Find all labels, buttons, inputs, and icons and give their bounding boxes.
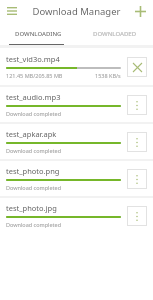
button[interactable]: More options xyxy=(127,169,147,189)
button[interactable]: More options xyxy=(127,206,147,226)
staticText: Download completed xyxy=(6,184,62,191)
button[interactable]: test_photo.png xyxy=(0,161,153,196)
button[interactable]: DOWNLOADED xyxy=(76,22,153,45)
staticText: test_apkar.apk xyxy=(6,129,57,139)
staticText: test_audio.mp3 xyxy=(6,92,61,102)
staticText: Download completed xyxy=(6,147,62,154)
staticText: 121.45 MB/205.85 MB xyxy=(6,72,63,79)
staticText: Download completed xyxy=(6,221,62,228)
staticText: test_photo.png xyxy=(6,166,60,176)
button[interactable]: test_audio.mp3 xyxy=(0,87,153,122)
button[interactable]: test_apkar.apk xyxy=(0,124,153,159)
button[interactable]: Cancel download xyxy=(127,57,147,77)
staticText: Download Manager xyxy=(0,5,153,18)
staticText: DOWNLOADED xyxy=(93,30,137,38)
button[interactable]: DOWNLOADING xyxy=(0,22,76,45)
staticText: DOWNLOADING xyxy=(15,30,62,38)
button[interactable]: More options xyxy=(127,132,147,152)
staticText: 1538 KB/s xyxy=(95,72,121,79)
button[interactable]: test_photo.jpg xyxy=(0,198,153,233)
staticText: Download completed xyxy=(6,110,62,117)
button[interactable]: Menu xyxy=(3,2,21,20)
button[interactable]: More options xyxy=(127,95,147,115)
button[interactable]: Add download xyxy=(131,2,149,20)
staticText: test_photo.jpg xyxy=(6,203,57,213)
button[interactable]: test_vid3o.mp4 xyxy=(0,48,153,85)
staticText: test_vid3o.mp4 xyxy=(6,54,60,64)
